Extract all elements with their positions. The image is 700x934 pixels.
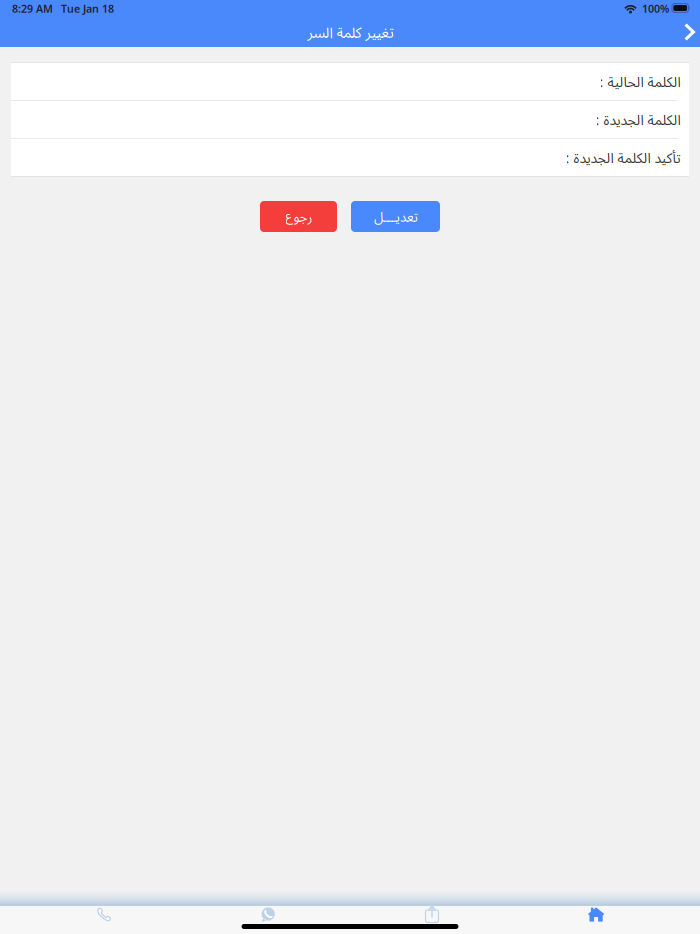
button[interactable]: رجوع — [260, 201, 337, 232]
button[interactable]: تأكيد الكلمة الجديدة : — [11, 139, 689, 176]
button[interactable]: تعديـــل — [351, 201, 440, 232]
button[interactable]: Home — [514, 906, 678, 923]
staticText: 100% — [642, 1, 669, 16]
staticText: تعديـــل — [373, 207, 417, 226]
button[interactable]: WhatsApp — [186, 906, 350, 923]
staticText: تأكيد الكلمة الجديدة : — [565, 148, 680, 167]
staticText: تغيير كلمة السر — [307, 22, 393, 42]
button[interactable]: الكلمة الجديدة : — [11, 101, 689, 138]
staticText: الكلمة الجديدة : — [595, 110, 680, 129]
staticText: رجوع — [285, 207, 312, 226]
staticText: الكلمة الحالية : — [599, 72, 680, 91]
staticText: 8:29 AM — [12, 1, 53, 16]
button[interactable]: Call — [22, 906, 186, 923]
button[interactable]: Back — [670, 19, 700, 45]
staticText: Tue Jan 18 — [61, 1, 114, 16]
button[interactable]: Share — [350, 906, 514, 923]
button[interactable]: الكلمة الحالية : — [11, 63, 689, 100]
